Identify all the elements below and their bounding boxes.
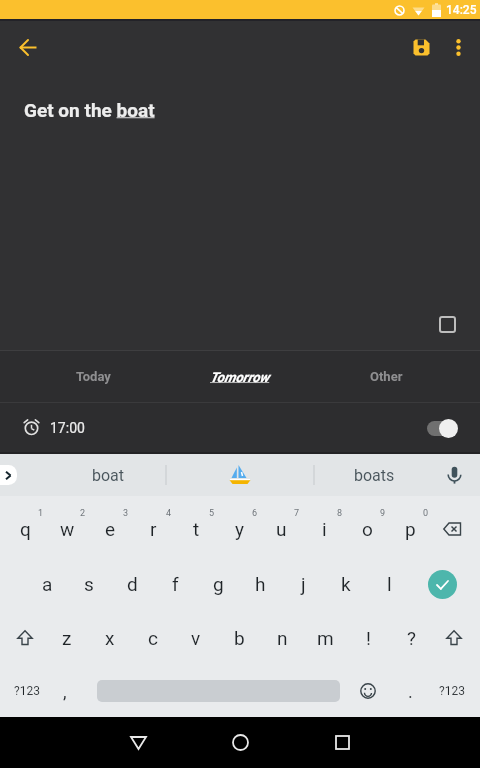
- button[interactable]: [307, 717, 377, 768]
- staticText: 7: [294, 508, 300, 519]
- button[interactable]: [12, 31, 44, 63]
- button[interactable]: c: [129, 618, 177, 658]
- staticText: j: [301, 573, 306, 595]
- button[interactable]: h: [236, 564, 284, 604]
- button[interactable]: l: [365, 564, 413, 604]
- button[interactable]: s: [65, 564, 113, 604]
- staticText: Get on the boat: [24, 99, 155, 121]
- button[interactable]: [444, 465, 464, 485]
- staticText: n: [277, 627, 288, 649]
- button[interactable]: d: [108, 564, 156, 604]
- staticText: y: [235, 518, 244, 540]
- staticText: 17:00: [50, 420, 85, 436]
- staticText: s: [84, 573, 94, 595]
- staticText: ?123: [14, 684, 40, 698]
- button[interactable]: t: [172, 509, 220, 549]
- button[interactable]: [166, 454, 314, 496]
- staticText: i: [322, 518, 327, 540]
- staticText: z: [62, 627, 72, 649]
- button[interactable]: [0, 465, 17, 485]
- button[interactable]: o: [343, 509, 391, 549]
- button[interactable]: .: [386, 671, 434, 711]
- button[interactable]: a: [23, 564, 71, 604]
- staticText: o: [362, 518, 373, 540]
- staticText: w: [60, 518, 75, 540]
- staticText: 9: [380, 508, 386, 519]
- staticText: c: [148, 627, 158, 649]
- staticText: .: [408, 681, 413, 702]
- staticText: 0: [423, 508, 429, 519]
- button[interactable]: 17:00: [0, 403, 480, 452]
- button[interactable]: i: [300, 509, 348, 549]
- button[interactable]: k: [322, 564, 370, 604]
- button[interactable]: ?: [387, 618, 435, 658]
- staticText: e: [105, 518, 116, 540]
- button[interactable]: r: [129, 509, 177, 549]
- staticText: d: [127, 573, 138, 595]
- staticText: q: [20, 518, 31, 540]
- button[interactable]: boats: [314, 454, 434, 496]
- button[interactable]: [432, 618, 476, 658]
- staticText: 3: [123, 508, 129, 519]
- staticText: 5: [209, 508, 215, 519]
- button[interactable]: f: [151, 564, 199, 604]
- button[interactable]: e: [86, 509, 134, 549]
- staticText: u: [276, 518, 287, 540]
- button[interactable]: Tomorrow: [166, 351, 313, 402]
- button[interactable]: Other: [313, 351, 460, 402]
- staticText: x: [105, 627, 115, 649]
- button[interactable]: [205, 717, 275, 768]
- button[interactable]: [430, 509, 474, 549]
- staticText: 1: [38, 508, 44, 519]
- staticText: r: [150, 518, 157, 540]
- staticText: b: [234, 627, 245, 649]
- button[interactable]: ?123: [428, 671, 476, 711]
- staticText: 6: [252, 508, 258, 519]
- button[interactable]: ,: [41, 671, 89, 711]
- staticText: 2: [80, 508, 86, 519]
- staticText: Today: [76, 369, 111, 384]
- button[interactable]: y: [215, 509, 263, 549]
- staticText: a: [42, 573, 53, 595]
- button[interactable]: [404, 30, 438, 64]
- button[interactable]: [442, 31, 474, 63]
- button[interactable]: [428, 570, 457, 599]
- button[interactable]: [3, 618, 47, 658]
- button[interactable]: [348, 671, 388, 711]
- staticText: Other: [370, 369, 403, 384]
- staticText: !: [366, 627, 371, 649]
- staticText: boats: [354, 466, 395, 485]
- button[interactable]: Today: [20, 351, 166, 402]
- button[interactable]: g: [194, 564, 242, 604]
- staticText: 8: [337, 508, 343, 519]
- staticText: h: [255, 573, 266, 595]
- button[interactable]: q: [1, 509, 49, 549]
- button[interactable]: b: [215, 618, 263, 658]
- button[interactable]: [426, 418, 458, 438]
- staticText: k: [341, 573, 351, 595]
- button[interactable]: v: [172, 618, 220, 658]
- staticText: p: [405, 518, 416, 540]
- button[interactable]: [103, 717, 173, 768]
- button[interactable]: !: [344, 618, 392, 658]
- staticText: v: [191, 627, 201, 649]
- button[interactable]: u: [257, 509, 305, 549]
- button[interactable]: p: [386, 509, 434, 549]
- staticText: ?123: [439, 684, 465, 698]
- button[interactable]: boat: [50, 454, 166, 496]
- button[interactable]: [440, 317, 455, 332]
- staticText: 4: [166, 508, 172, 519]
- button[interactable]: z: [43, 618, 91, 658]
- button[interactable]: j: [279, 564, 327, 604]
- button[interactable]: ?123: [3, 671, 51, 711]
- staticText: m: [317, 627, 334, 649]
- staticText: 14:25: [446, 3, 477, 17]
- button[interactable]: n: [258, 618, 306, 658]
- staticText: Tomorrow: [210, 369, 270, 385]
- button[interactable]: w: [43, 509, 91, 549]
- button[interactable]: x: [86, 618, 134, 658]
- staticText: f: [172, 573, 179, 595]
- staticText: ,: [63, 681, 67, 702]
- button[interactable]: m: [301, 618, 349, 658]
